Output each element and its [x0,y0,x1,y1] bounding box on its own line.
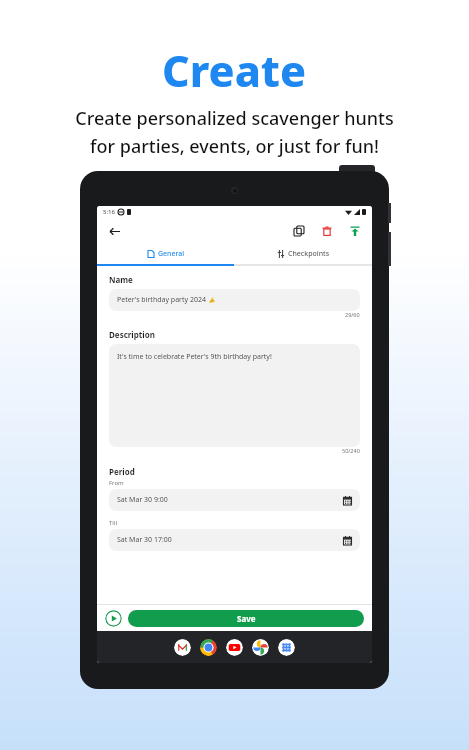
button[interactable]: Sat Mar 30 17:00 [109,529,360,551]
button[interactable]: Sat Mar 30 9:00 [109,489,360,511]
button[interactable]: Checkpoints [234,244,372,264]
staticText: Create personalized scavenger hunts [75,106,394,131]
staticText: Sat Mar 30 17:00 [117,535,172,545]
button[interactable]: YouTube [226,639,243,656]
button[interactable]: Publish [346,222,364,240]
staticText: It's time to celebrate Peter's 9th birth… [117,352,272,362]
staticText: From [109,479,124,487]
button[interactable]: Save [128,610,364,627]
button[interactable]: All apps [278,639,295,656]
staticText: 29/60 [345,311,360,318]
button[interactable]: Peter's birthday party 2024 [109,289,360,311]
staticText: General [158,249,185,259]
button[interactable]: Duplicate [290,222,308,240]
button[interactable]: Preview [105,610,122,627]
staticText: for parties, events, or just for fun! [90,134,379,159]
button[interactable]: Delete [318,222,336,240]
staticText: 5:16 [103,208,115,216]
staticText: Save [237,613,256,624]
button[interactable]: It's time to celebrate Peter's 9th birth… [109,344,360,447]
staticText: Period [109,466,135,477]
staticText: Checkpoints [288,249,330,259]
staticText: Name [109,274,133,285]
button[interactable]: Chrome [200,639,217,656]
staticText: 50/240 [342,447,360,454]
staticText: Sat Mar 30 9:00 [117,495,168,505]
button[interactable]: Photos [252,639,269,656]
staticText: Create [162,41,307,100]
staticText: Peter's birthday party 2024 [117,295,206,305]
button[interactable]: General [97,244,234,264]
button[interactable]: Back [105,222,123,240]
staticText: Till [109,519,117,527]
staticText: Description [109,329,155,340]
button[interactable]: Gmail [174,639,191,656]
